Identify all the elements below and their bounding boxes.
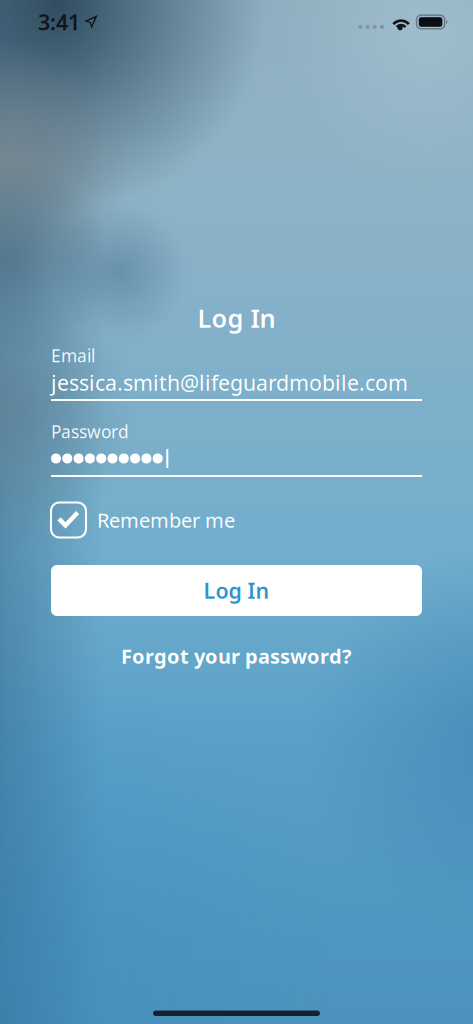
button[interactable]: Log In (51, 565, 422, 616)
staticText: 3:41 (38, 8, 80, 36)
staticText: Password (51, 420, 129, 443)
button[interactable]: Forgot your password? (121, 643, 352, 669)
staticText: Log In (197, 301, 275, 335)
staticText: Remember me (97, 507, 235, 533)
staticText: Forgot your password? (121, 643, 352, 669)
staticText: Log In (203, 576, 269, 605)
button[interactable]: Remember me (51, 501, 422, 539)
staticText: Email (51, 344, 95, 367)
staticText: jessica.smith@lifeguardmobile.com (51, 368, 408, 397)
